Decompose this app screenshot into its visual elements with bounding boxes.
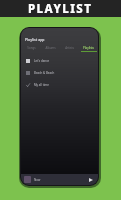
staticText: Songs: [27, 46, 36, 50]
button[interactable]: Let's dance: [21, 55, 98, 67]
button[interactable]: Playlists: [79, 46, 98, 54]
button[interactable]: My all time: [21, 79, 98, 91]
staticText: PLAYLIST: [28, 1, 93, 17]
staticText: My all time: [34, 83, 49, 87]
staticText: Playlist app: [25, 37, 45, 42]
button[interactable]: Play: [87, 176, 95, 184]
staticText: Beach & Beach: [34, 71, 55, 75]
staticText: Let's dance: [34, 59, 50, 63]
staticText: Playlists: [83, 46, 94, 50]
staticText: Albums: [45, 46, 56, 50]
button[interactable]: Albums: [41, 46, 60, 54]
button[interactable]: Songs: [21, 46, 41, 54]
button[interactable]: Now: [21, 174, 98, 185]
button[interactable]: Artists: [60, 46, 79, 54]
staticText: Artists: [65, 46, 74, 50]
button[interactable]: Beach & Beach: [21, 67, 98, 79]
staticText: Now: [34, 178, 41, 182]
